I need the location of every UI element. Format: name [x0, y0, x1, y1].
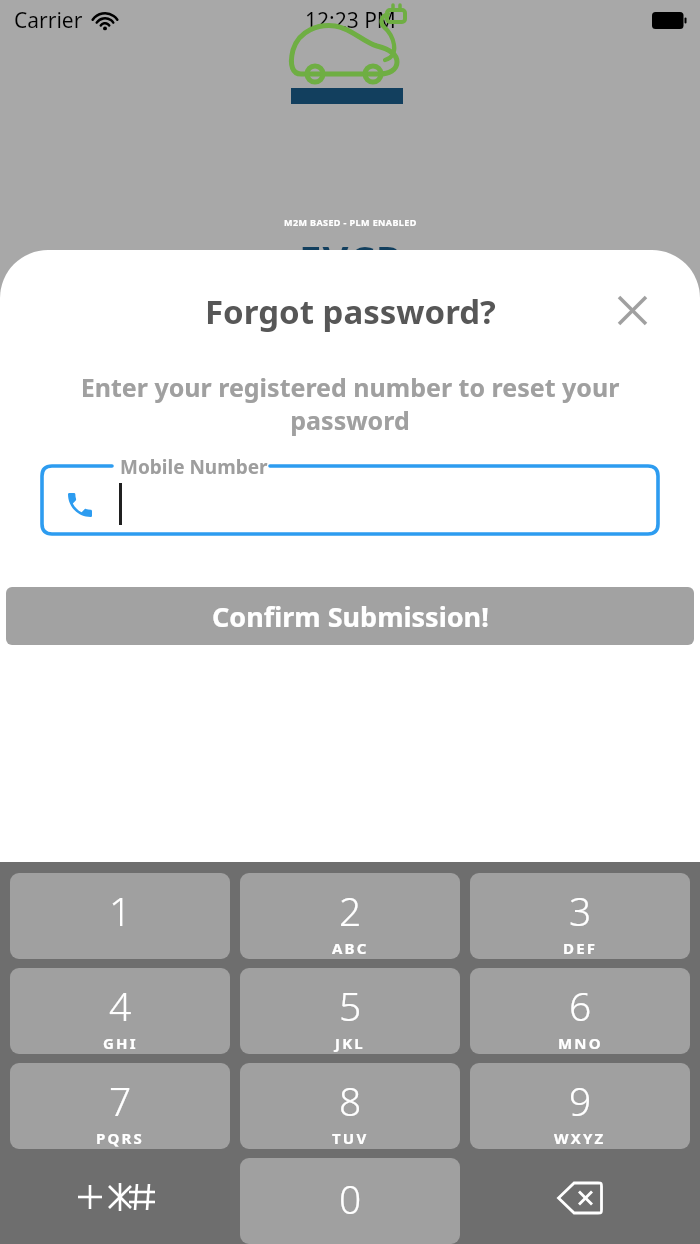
button[interactable]: 1 [10, 873, 230, 959]
staticText: EVCP [299, 232, 402, 286]
button[interactable]: 0 [240, 1158, 460, 1244]
button[interactable]: 2 [240, 873, 460, 959]
staticText: 9 [569, 1074, 592, 1127]
button[interactable]: 5 [240, 968, 460, 1054]
button[interactable]: Symbols [10, 1158, 230, 1244]
staticText: 0 [339, 1172, 362, 1225]
staticText: MNO [558, 1033, 603, 1053]
staticText: 7 [109, 1074, 132, 1127]
staticText: 8 [339, 1074, 362, 1127]
staticText: Mobile Number [120, 454, 268, 480]
staticText: Forgot password? [205, 289, 496, 334]
button[interactable]: Backspace [470, 1158, 690, 1244]
staticText: Confirm Submission! [212, 598, 489, 635]
button[interactable]: Close [610, 288, 654, 332]
button[interactable]: 7 [10, 1063, 230, 1149]
button[interactable]: Mobile Number [42, 453, 658, 543]
staticText: Enter your registered number to reset yo… [52, 370, 648, 437]
staticText: 2 [339, 884, 362, 937]
staticText: WXYZ [554, 1128, 606, 1148]
button[interactable]: Confirm Submission! [6, 587, 694, 645]
staticText: 3 [569, 884, 592, 937]
staticText: 4 [109, 979, 132, 1032]
staticText: PQRS [96, 1128, 145, 1148]
staticText: TUV [332, 1128, 369, 1148]
staticText: DEF [563, 938, 598, 958]
button[interactable]: 3 [470, 873, 690, 959]
staticText: M2M BASED - PLM ENABLED [284, 216, 417, 228]
staticText: 12:23 PM [305, 6, 396, 35]
staticText: 6 [569, 979, 592, 1032]
staticText: GHI [103, 1033, 138, 1053]
staticText: 1 [109, 884, 132, 937]
button[interactable]: 9 [470, 1063, 690, 1149]
button[interactable]: 6 [470, 968, 690, 1054]
staticText: Carrier [14, 6, 83, 35]
button[interactable]: 8 [240, 1063, 460, 1149]
staticText: 5 [339, 979, 362, 1032]
button[interactable]: 4 [10, 968, 230, 1054]
staticText: ABC [332, 938, 369, 958]
staticText: JKL [335, 1033, 365, 1053]
